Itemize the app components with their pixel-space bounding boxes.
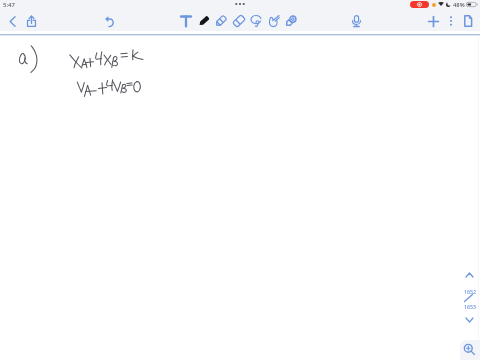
button[interactable]: Pen bbox=[195, 10, 213, 32]
button[interactable]: Eraser bbox=[230, 10, 248, 32]
button[interactable]: Highlighter bbox=[212, 10, 230, 32]
button[interactable]: Hand tool bbox=[265, 10, 283, 32]
button[interactable]: Text tool bbox=[177, 10, 195, 32]
staticText: 5:47 bbox=[3, 1, 15, 9]
button[interactable]: More options bbox=[442, 10, 460, 32]
button[interactable]: Microphone bbox=[347, 10, 365, 32]
button[interactable]: Next page bbox=[461, 312, 477, 328]
button[interactable]: Lasso select bbox=[247, 10, 265, 32]
button[interactable]: Share bbox=[22, 10, 40, 32]
button[interactable]: Undo bbox=[100, 10, 118, 32]
button[interactable]: Zoom in bbox=[460, 340, 480, 360]
button[interactable]: Shape tool bbox=[282, 10, 300, 32]
button[interactable]: Previous page bbox=[461, 267, 477, 283]
staticText: 1653 bbox=[464, 303, 476, 310]
button[interactable]: Back bbox=[3, 10, 21, 32]
button[interactable]: Add page bbox=[424, 10, 442, 32]
staticText: 48% bbox=[453, 1, 465, 9]
button[interactable]: Pages bbox=[459, 10, 477, 32]
staticText: 1652 bbox=[464, 288, 476, 295]
